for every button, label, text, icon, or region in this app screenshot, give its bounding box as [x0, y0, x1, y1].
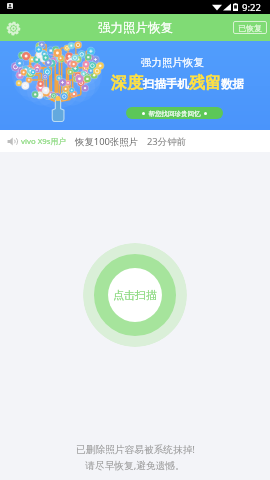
- staticText: 已恢复: [238, 23, 262, 33]
- staticText: 残留: [189, 73, 221, 93]
- staticText: 请尽早恢复,避免遗憾。: [85, 459, 185, 472]
- staticText: 点击扫描: [113, 288, 157, 302]
- staticText: 23分钟前: [147, 135, 186, 148]
- staticText: 帮您找回珍贵回忆: [145, 109, 204, 118]
- button[interactable]: 已恢复: [233, 21, 267, 34]
- staticText: vivo X9s用户: [21, 136, 67, 147]
- staticText: 深度: [111, 73, 143, 93]
- button[interactable]: Settings: [4, 19, 22, 37]
- button[interactable]: 点击扫描: [83, 243, 187, 347]
- staticText: 9:22: [242, 1, 261, 14]
- staticText: 强力照片恢复: [141, 56, 204, 69]
- staticText: 扫描手机: [143, 77, 189, 91]
- staticText: 强力照片恢复: [98, 20, 173, 36]
- staticText: 恢复100张照片: [75, 135, 139, 148]
- staticText: 已删除照片容易被系统抹掉!: [76, 443, 195, 456]
- staticText: 数据: [221, 77, 244, 91]
